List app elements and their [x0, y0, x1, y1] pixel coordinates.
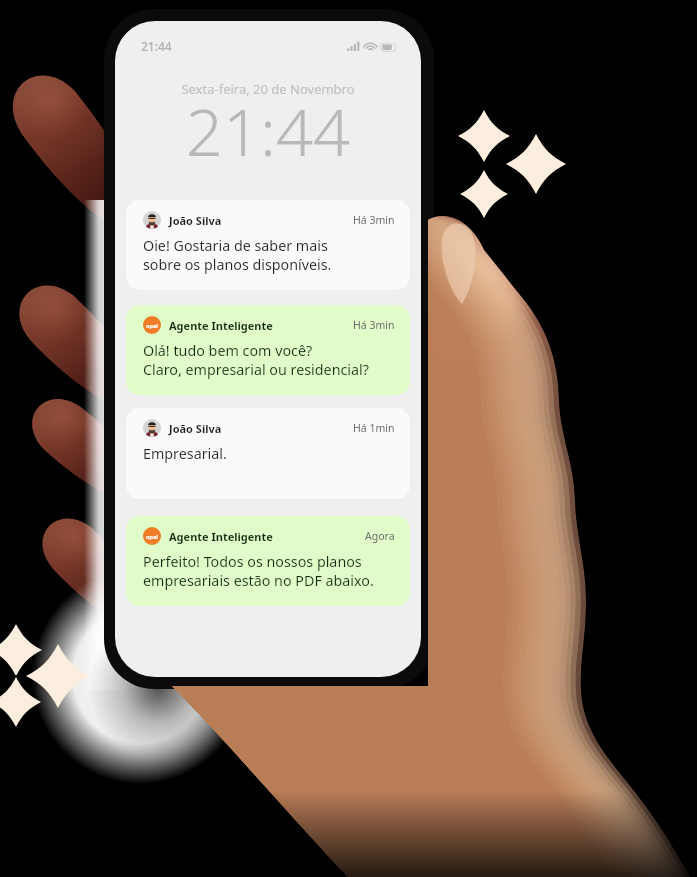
staticText: Oie! Gostaria de saber mais [143, 236, 328, 255]
staticText: Há 3min [353, 318, 395, 332]
staticText: Sexta-feira, 20 de Novembro [115, 80, 421, 98]
staticText: Perfeito! Todos os nossos planos [143, 552, 362, 571]
staticText: opal [146, 533, 158, 540]
staticText: sobre os planos disponíveis. [143, 255, 332, 274]
staticText: Claro, empresarial ou residencial? [143, 360, 369, 379]
staticText: Agora [365, 529, 395, 543]
staticText: opal [146, 322, 158, 329]
staticText: Há 3min [353, 213, 395, 227]
button[interactable]: opal [126, 516, 410, 606]
staticText: Há 1min [353, 421, 395, 435]
staticText: Agente Inteligente [169, 318, 273, 333]
button[interactable]: João Silva [126, 200, 410, 290]
staticText: Empresarial. [143, 444, 227, 463]
staticText: João Silva [169, 213, 222, 228]
staticText: Olá! tudo bem com você? [143, 341, 313, 360]
staticText: empresariais estão no PDF abaixo. [143, 571, 374, 590]
button[interactable]: opal [126, 305, 410, 395]
button[interactable]: João Silva [126, 408, 410, 499]
staticText: João Silva [169, 421, 222, 436]
staticText: Agente Inteligente [169, 529, 273, 544]
staticText: 21:44 [141, 38, 172, 54]
staticText: 21:44 [115, 87, 421, 158]
